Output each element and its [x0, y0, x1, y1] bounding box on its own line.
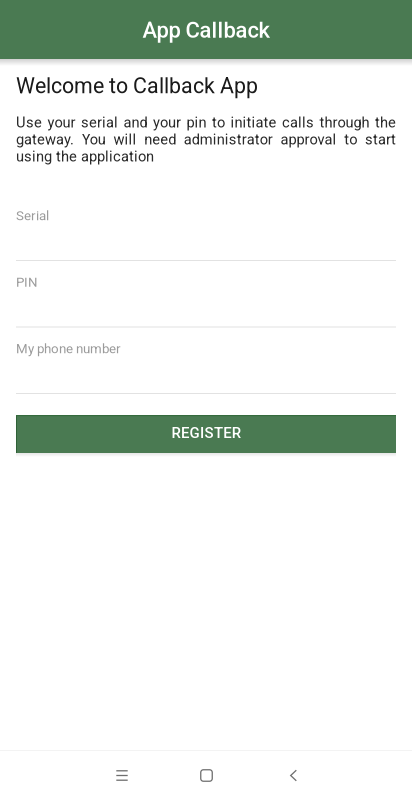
staticText: approval — [281, 131, 337, 148]
staticText: You — [82, 131, 106, 148]
staticText: to — [344, 131, 357, 148]
staticText: pin — [186, 114, 206, 131]
staticText: My phone number — [16, 341, 121, 356]
button[interactable]: REGISTER — [16, 415, 396, 453]
staticText: App Callback — [142, 17, 269, 43]
staticText: administrator — [184, 131, 273, 148]
staticText: your — [47, 114, 75, 131]
button[interactable]: Home — [182, 751, 230, 799]
staticText: Welcome to Callback App — [16, 73, 258, 98]
staticText: and — [123, 114, 147, 131]
staticText: PIN — [16, 274, 38, 290]
staticText: REGISTER — [172, 424, 241, 442]
button[interactable]: My phone number — [16, 344, 396, 394]
staticText: start — [365, 131, 396, 148]
staticText: using the application — [16, 148, 154, 165]
staticText: will — [113, 131, 136, 148]
staticText: your — [153, 114, 181, 131]
staticText: calls — [282, 114, 314, 131]
staticText: to — [212, 114, 225, 131]
staticText: gateway. — [16, 131, 74, 148]
staticText: need — [144, 131, 176, 148]
button[interactable]: Serial — [16, 211, 396, 261]
staticText: serial — [81, 114, 118, 131]
staticText: the — [375, 114, 396, 131]
staticText: initiate — [230, 114, 276, 131]
staticText: Use — [16, 114, 42, 131]
button[interactable]: Recents — [98, 751, 146, 799]
button[interactable]: PIN — [16, 277, 396, 327]
staticText: through — [319, 114, 369, 131]
button[interactable]: Back — [269, 751, 317, 799]
staticText: Serial — [16, 208, 49, 223]
